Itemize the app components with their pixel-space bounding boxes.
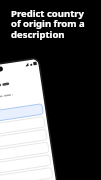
button[interactable]: Phone screenshot preview xyxy=(0,0,101,180)
staticText: Predict country of origin from a descrip… xyxy=(11,7,95,41)
